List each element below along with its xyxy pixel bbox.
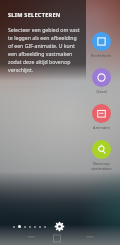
staticText: Animatie [93, 125, 110, 130]
staticText: Bovenop vastmaken [91, 161, 112, 171]
staticText: Ovaal [96, 89, 107, 94]
staticText: SLIM SELECTEREN [8, 11, 61, 19]
staticText: Selecteer een gebied om vast te leggen a… [8, 26, 80, 73]
staticText: Rechthoek [91, 53, 111, 58]
button[interactable]: Bovenop vastmaken [84, 139, 118, 172]
button[interactable]: Instellingen [51, 218, 67, 234]
button[interactable]: Animatie [84, 103, 118, 131]
button[interactable]: Ovaal [84, 67, 118, 95]
button[interactable]: Rechthoek [84, 31, 118, 59]
